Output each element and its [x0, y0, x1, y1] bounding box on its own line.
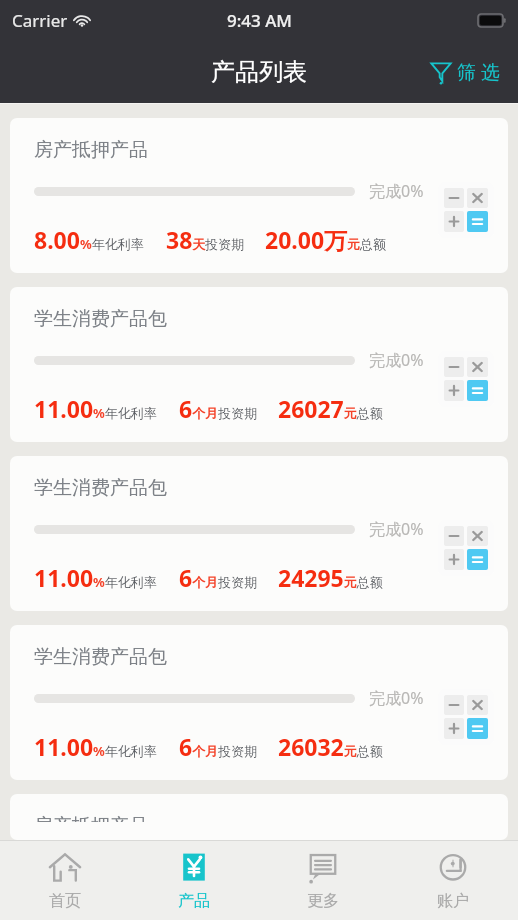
button[interactable]: 计算器: [438, 182, 494, 238]
staticText: 24295元总额: [278, 562, 383, 593]
button[interactable]: 学生消费产品包: [10, 625, 508, 780]
button[interactable]: 筛 选: [426, 53, 504, 91]
button[interactable]: 计算器: [438, 520, 494, 576]
button[interactable]: 产品: [129, 841, 258, 920]
staticText: 9:43 AM: [227, 9, 292, 32]
staticText: 完成0%: [369, 349, 424, 371]
staticText: 38天投资期: [166, 224, 245, 255]
staticText: 完成0%: [369, 180, 424, 202]
button[interactable]: 账户: [388, 841, 518, 920]
staticText: 6个月投资期: [179, 731, 258, 762]
staticText: 房产抵押产品: [34, 138, 148, 162]
button[interactable]: 房产抵押产品: [10, 118, 508, 273]
staticText: Carrier: [12, 9, 68, 32]
staticText: 更多: [307, 891, 339, 911]
staticText: 完成0%: [369, 518, 424, 540]
button[interactable]: 学生消费产品包: [10, 287, 508, 442]
staticText: 学生消费产品包: [34, 307, 167, 331]
staticText: 筛 选: [457, 59, 500, 85]
button[interactable]: 计算器: [438, 351, 494, 407]
staticText: 11.00%年化利率: [34, 393, 157, 424]
staticText: 账户: [437, 891, 469, 911]
staticText: 20.00万元总额: [265, 224, 387, 255]
staticText: 6个月投资期: [179, 562, 258, 593]
staticText: 学生消费产品包: [34, 645, 167, 669]
staticText: 房产抵押产品: [34, 814, 148, 822]
staticText: 首页: [49, 891, 81, 911]
button[interactable]: 更多: [258, 841, 388, 920]
staticText: 6个月投资期: [179, 393, 258, 424]
button[interactable]: 学生消费产品包: [10, 456, 508, 611]
button[interactable]: 房产抵押产品: [10, 794, 508, 840]
staticText: 完成0%: [369, 687, 424, 709]
staticText: 11.00%年化利率: [34, 731, 157, 762]
staticText: 产品列表: [211, 57, 307, 87]
button[interactable]: 首页: [0, 841, 129, 920]
staticText: 产品: [178, 891, 210, 911]
staticText: 26032元总额: [278, 731, 383, 762]
button[interactable]: 计算器: [438, 689, 494, 745]
staticText: 11.00%年化利率: [34, 562, 157, 593]
staticText: 8.00%年化利率: [34, 224, 144, 255]
staticText: 学生消费产品包: [34, 476, 167, 500]
staticText: 26027元总额: [278, 393, 383, 424]
